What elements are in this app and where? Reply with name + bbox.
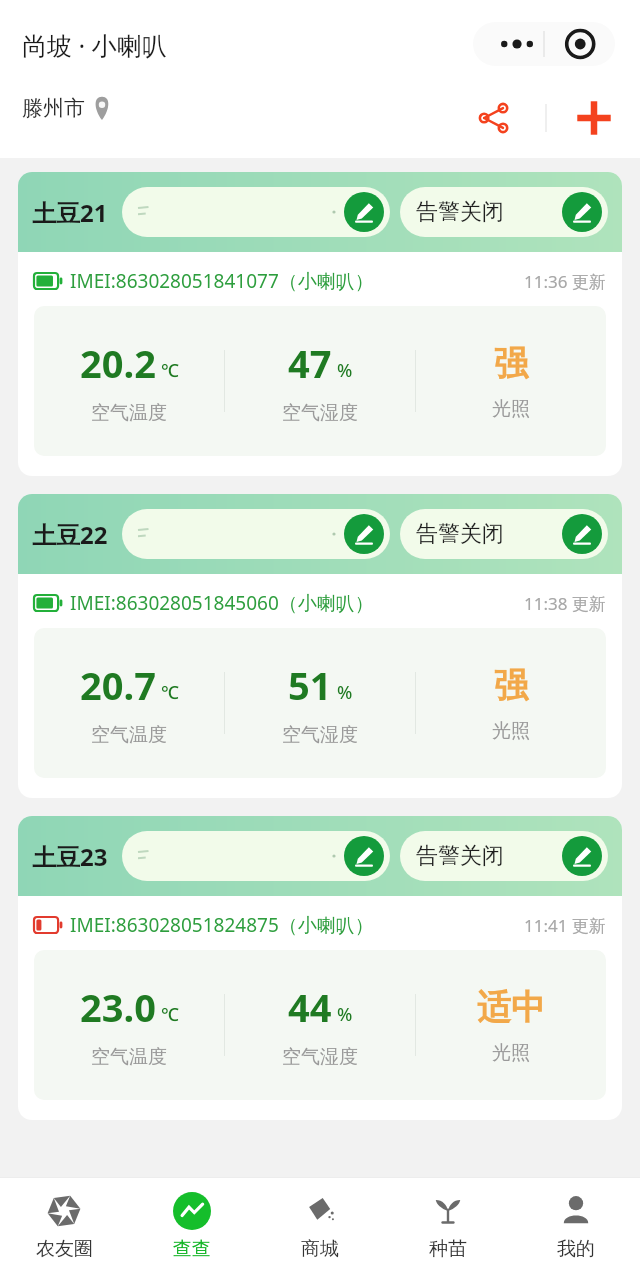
button[interactable]: 种苗 xyxy=(384,1178,512,1274)
button[interactable]: 土豆22 xyxy=(18,494,622,798)
staticText: % xyxy=(337,680,353,705)
staticText: 滕州市 xyxy=(22,95,85,121)
staticText: 光照 xyxy=(492,719,530,743)
staticText: 20.2 xyxy=(80,337,156,389)
button[interactable]: Edit xyxy=(122,509,390,559)
button[interactable]: 告警关闭 xyxy=(400,831,608,881)
staticText: 商城 xyxy=(301,1237,339,1261)
button[interactable]: Edit xyxy=(562,836,602,876)
staticText: 空气温度 xyxy=(91,723,167,747)
button[interactable]: 告警关闭 xyxy=(400,509,608,559)
staticText: 44 xyxy=(288,981,332,1033)
staticText: 告警关闭 xyxy=(416,198,504,226)
button[interactable]: 告警关闭 xyxy=(400,187,608,237)
staticText: ℃ xyxy=(161,358,179,383)
button[interactable]: 土豆21 xyxy=(18,172,622,476)
button[interactable]: 查查 xyxy=(128,1178,256,1274)
staticText: 11:36 更新 xyxy=(524,270,606,293)
staticText: 我的 xyxy=(557,1237,595,1261)
staticText: 23.0 xyxy=(80,981,156,1033)
staticText: 土豆22 xyxy=(32,518,108,551)
staticText: % xyxy=(337,358,353,383)
button[interactable]: Edit xyxy=(562,514,602,554)
staticText: 强 xyxy=(494,664,528,707)
staticText: 种苗 xyxy=(429,1237,467,1261)
button[interactable]: 农友圈 xyxy=(0,1178,128,1274)
staticText: 尚坡 · 小喇叭 xyxy=(22,28,167,62)
staticText: 47 xyxy=(288,337,332,389)
staticText: 20.7 xyxy=(80,659,156,711)
staticText: 空气湿度 xyxy=(282,401,358,425)
button[interactable]: Edit xyxy=(122,831,390,881)
button[interactable]: Edit xyxy=(344,836,384,876)
staticText: 查查 xyxy=(173,1237,211,1261)
staticText: IMEI:863028051841077（小喇叭） xyxy=(70,268,374,294)
staticText: IMEI:863028051845060（小喇叭） xyxy=(70,590,374,616)
staticText: 农友圈 xyxy=(36,1237,93,1261)
button[interactable]: 土豆23 xyxy=(18,816,622,1120)
staticText: ℃ xyxy=(161,680,179,705)
button[interactable]: 我的 xyxy=(512,1178,640,1274)
staticText: 告警关闭 xyxy=(416,842,504,870)
staticText: ℃ xyxy=(161,1002,179,1027)
staticText: IMEI:863028051824875（小喇叭） xyxy=(70,912,374,938)
button[interactable]: Edit xyxy=(562,192,602,232)
staticText: 空气湿度 xyxy=(282,723,358,747)
staticText: 土豆21 xyxy=(32,196,108,229)
staticText: 11:38 更新 xyxy=(524,592,606,615)
staticText: 空气湿度 xyxy=(282,1045,358,1069)
button[interactable]: 滕州市 xyxy=(22,95,111,121)
staticText: 强 xyxy=(494,342,528,385)
staticText: 11:41 更新 xyxy=(524,914,606,937)
button[interactable]: Share xyxy=(468,92,520,144)
staticText: 光照 xyxy=(492,1041,530,1065)
staticText: 土豆23 xyxy=(32,840,108,873)
button[interactable]: 商城 xyxy=(256,1178,384,1274)
staticText: 光照 xyxy=(492,397,530,421)
staticText: 51 xyxy=(288,659,332,711)
button[interactable]: Add xyxy=(568,92,620,144)
button[interactable]: Edit xyxy=(122,187,390,237)
button[interactable]: Edit xyxy=(344,514,384,554)
staticText: 告警关闭 xyxy=(416,520,504,548)
staticText: 适中 xyxy=(477,986,545,1029)
staticText: 空气温度 xyxy=(91,401,167,425)
staticText: 空气温度 xyxy=(91,1045,167,1069)
button[interactable]: Edit xyxy=(344,192,384,232)
button[interactable]: More and Close xyxy=(473,22,615,66)
staticText: % xyxy=(337,1002,353,1027)
